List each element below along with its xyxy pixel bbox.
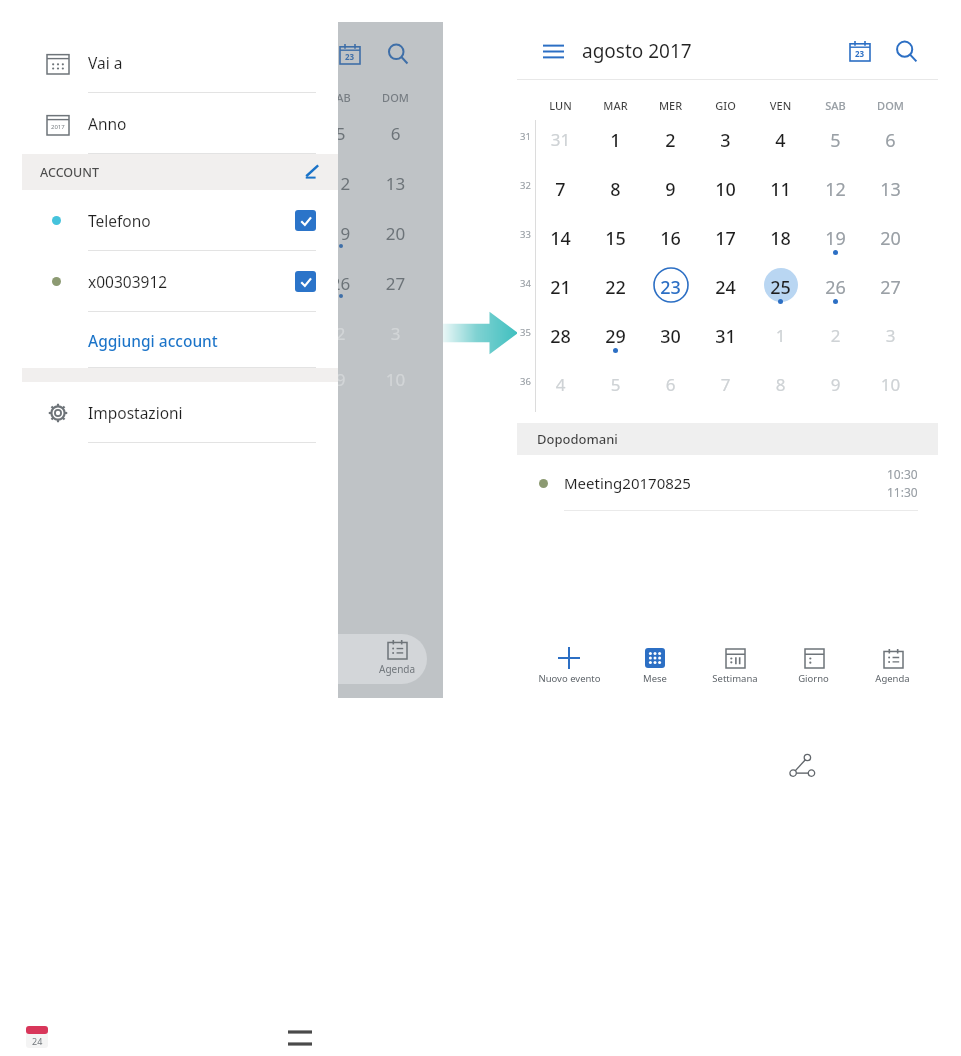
- staticText: 31: [533, 128, 588, 151]
- staticText: Mese: [643, 672, 667, 685]
- button[interactable]: Oggi: [842, 33, 878, 69]
- staticText: 13: [863, 177, 918, 202]
- staticText: 1: [93, 122, 148, 145]
- staticText: 18: [753, 226, 808, 251]
- staticText: 14: [533, 226, 588, 251]
- staticText: 15: [93, 222, 148, 245]
- staticText: GIO: [203, 90, 258, 105]
- staticText: 3: [698, 128, 753, 153]
- button[interactable]: Agenda: [367, 640, 427, 676]
- staticText: MER: [643, 98, 698, 113]
- staticText: 2: [808, 324, 863, 347]
- staticText: 32: [517, 179, 534, 192]
- staticText: 12: [313, 172, 368, 195]
- staticText: 8: [753, 373, 808, 396]
- button[interactable]: Giorno: [774, 642, 853, 690]
- staticText: 7: [698, 373, 753, 396]
- staticText: 19: [313, 222, 368, 245]
- button[interactable]: Cerca: [380, 36, 416, 72]
- button[interactable]: Agenda: [853, 642, 932, 690]
- staticText: 10: [863, 373, 918, 396]
- staticText: 10:30: [887, 466, 918, 482]
- staticText: Impostazioni: [88, 402, 183, 423]
- staticText: 8: [588, 177, 643, 202]
- button[interactable]: Modifica: [296, 158, 324, 186]
- staticText: 21: [38, 272, 93, 295]
- staticText: 16: [643, 226, 698, 251]
- staticText: 11: [258, 172, 313, 195]
- staticText: 28: [533, 324, 588, 349]
- staticText: 31: [203, 322, 258, 345]
- staticText: 31: [38, 122, 93, 145]
- staticText: ACCOUNT: [40, 164, 100, 181]
- staticText: Agenda: [875, 672, 910, 685]
- staticText: Settimana: [712, 672, 758, 685]
- staticText: 1: [588, 128, 643, 153]
- staticText: 9: [148, 172, 203, 195]
- staticText: 29: [588, 324, 643, 349]
- staticText: 2017: [51, 123, 65, 131]
- staticText: SAB: [808, 98, 863, 113]
- staticText: MAR: [93, 90, 148, 105]
- button[interactable]: Cerca: [888, 33, 924, 69]
- staticText: 5: [93, 368, 148, 391]
- staticText: VEN: [258, 90, 313, 105]
- staticText: 31: [517, 130, 534, 143]
- staticText: 27: [368, 272, 423, 295]
- staticText: 22: [588, 275, 643, 300]
- button[interactable]: Aggiungi account: [22, 312, 338, 368]
- staticText: 10: [368, 368, 423, 391]
- button[interactable]: Telefono: [22, 190, 338, 251]
- staticText: 11:30: [887, 484, 918, 500]
- staticText: 16: [148, 222, 203, 245]
- staticText: DOM: [368, 90, 423, 105]
- button[interactable]: Impostazioni: [22, 382, 338, 443]
- staticText: 20: [368, 222, 423, 245]
- staticText: 5: [588, 373, 643, 396]
- staticText: GIO: [698, 98, 753, 113]
- staticText: DOM: [863, 98, 918, 113]
- staticText: 12: [808, 177, 863, 202]
- staticText: Aggiungi account: [88, 330, 218, 351]
- button[interactable]: Oggi: [332, 36, 368, 72]
- staticText: 19: [808, 226, 863, 251]
- button[interactable]: Mese: [615, 642, 695, 690]
- staticText: 26: [808, 275, 863, 300]
- staticText: agosto 2017: [582, 38, 692, 64]
- button[interactable]: Nuovo evento: [523, 642, 615, 690]
- staticText: 18: [258, 222, 313, 245]
- staticText: VEN: [753, 98, 808, 113]
- staticText: 7: [38, 172, 93, 195]
- staticText: 6: [368, 122, 423, 145]
- staticText: 25: [258, 272, 313, 295]
- staticText: 34: [517, 277, 534, 290]
- staticText: 2: [643, 128, 698, 153]
- button[interactable]: Meeting20170825: [517, 455, 938, 511]
- button[interactable]: Vai a: [22, 32, 338, 93]
- button[interactable]: Menu: [537, 35, 569, 67]
- staticText: 2: [313, 322, 368, 345]
- staticText: 14: [38, 222, 93, 245]
- staticText: 6: [148, 368, 203, 391]
- staticText: MAR: [588, 98, 643, 113]
- staticText: 4: [533, 373, 588, 396]
- staticText: 8: [93, 172, 148, 195]
- staticText: 7: [533, 177, 588, 202]
- staticText: 29: [93, 322, 148, 345]
- staticText: 15: [588, 226, 643, 251]
- button[interactable]: x00303912: [22, 251, 338, 312]
- button[interactable]: Settimana: [695, 642, 774, 690]
- staticText: 4: [753, 128, 808, 153]
- staticText: 5: [808, 128, 863, 153]
- staticText: 27: [863, 275, 918, 300]
- button[interactable]: 2017: [22, 93, 338, 154]
- staticText: 20: [863, 226, 918, 251]
- staticText: 35: [517, 326, 534, 339]
- staticText: 8: [258, 368, 313, 391]
- staticText: Giorno: [798, 672, 829, 685]
